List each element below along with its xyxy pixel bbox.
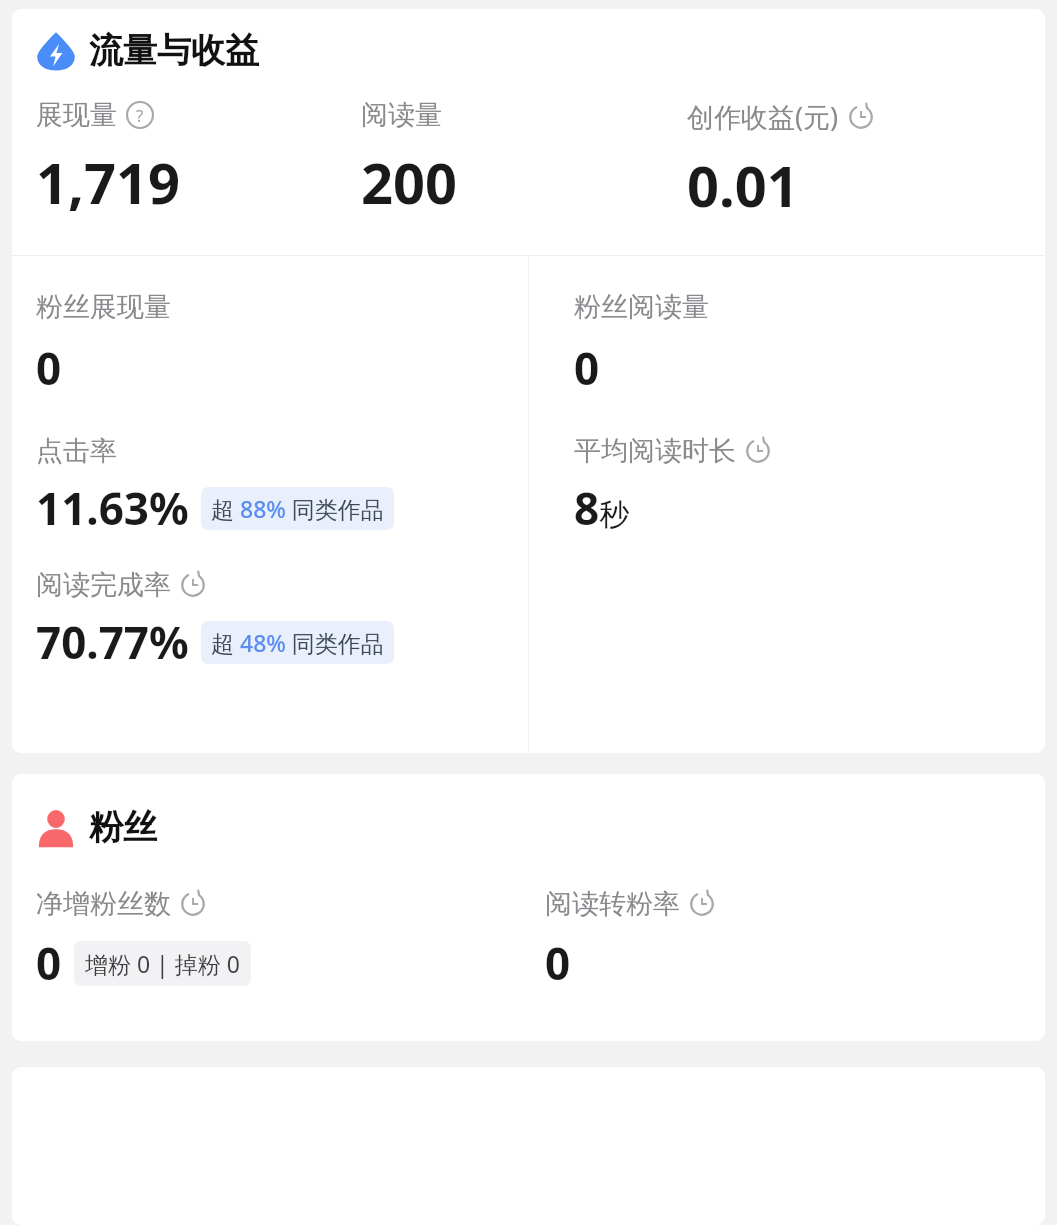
staticText: 增粉 0 | 掉粉 0 — [85, 948, 240, 979]
staticText: 阅读完成率 — [36, 568, 171, 602]
staticText: 流量与收益 — [89, 29, 259, 72]
button[interactable]: Data updated with delay — [180, 891, 206, 917]
staticText: 创作收益(元) — [687, 98, 839, 135]
staticText: 11.63% — [36, 478, 189, 538]
staticText: 超 88% 同类作品 — [211, 493, 384, 524]
button[interactable]: 流量与收益 — [12, 9, 1045, 76]
staticText: 200 — [361, 144, 458, 220]
staticText: 平均阅读时长 — [574, 434, 736, 468]
staticText: ? — [136, 104, 144, 127]
staticText: 展现量 — [36, 98, 117, 132]
button[interactable]: Impressions info — [126, 101, 154, 129]
button[interactable]: Data updated with delay — [180, 572, 206, 598]
button[interactable]: 超 48% 同类作品 — [201, 621, 394, 664]
staticText: 0 — [574, 338, 600, 398]
button[interactable]: 超 88% 同类作品 — [201, 487, 394, 530]
staticText: 8秒 — [574, 478, 630, 538]
staticText: 粉丝阅读量 — [574, 290, 709, 324]
button[interactable]: 增粉 0 | 掉粉 0 — [74, 941, 251, 986]
button[interactable]: Data updated with delay — [745, 438, 771, 464]
staticText: 阅读量 — [361, 98, 442, 132]
button[interactable]: Data updated with delay — [848, 104, 874, 130]
staticText: 1,719 — [36, 144, 181, 220]
staticText: 粉丝 — [89, 806, 157, 849]
staticText: 0 — [36, 338, 62, 398]
staticText: 0 — [545, 933, 571, 993]
staticText: 净增粉丝数 — [36, 887, 171, 921]
staticText: 0 — [36, 933, 62, 993]
staticText: 阅读转粉率 — [545, 887, 680, 921]
staticText: 粉丝展现量 — [36, 290, 171, 324]
staticText: 超 48% 同类作品 — [211, 627, 384, 658]
button[interactable]: Data updated with delay — [689, 891, 715, 917]
button[interactable]: 粉丝 — [12, 774, 1045, 853]
staticText: 70.77% — [36, 612, 189, 672]
staticText: 点击率 — [36, 434, 117, 468]
staticText: 0.01 — [687, 147, 799, 223]
